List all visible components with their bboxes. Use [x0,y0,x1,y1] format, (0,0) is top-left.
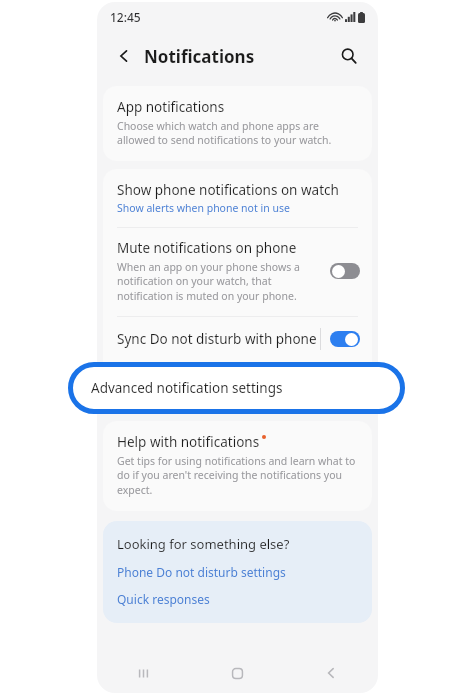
button[interactable]: Search [334,41,364,71]
button[interactable]: Recents [97,653,190,693]
staticText: Notifications [144,45,255,68]
staticText: App notifications [117,98,225,116]
button[interactable]: Home [190,653,284,693]
button[interactable]: Toggle off [330,263,360,279]
staticText: Advanced notification settings [91,379,283,397]
staticText: Get tips for using notifications and lea… [117,454,358,497]
staticText: Show phone notifications on watch [117,181,339,199]
staticText: Choose which watch and phone apps are al… [117,119,358,147]
button[interactable]: Sync Do not disturb with phone [103,317,372,361]
staticText: Quick responses [117,591,210,607]
button[interactable]: Back [284,653,378,693]
button[interactable] [103,361,372,413]
staticText: Phone Do not disturb settings [117,564,286,580]
staticText: Show alerts when phone not in use [117,201,290,215]
staticText: Mute notifications on phone [117,239,297,257]
button[interactable]: Show phone notifications on watch [103,169,372,227]
button[interactable]: Toggle on [330,331,360,347]
staticText: When an app on your phone shows a notifi… [117,260,322,303]
button[interactable]: Back [109,41,139,71]
button[interactable]: App notifications [103,86,372,161]
button[interactable]: Help with notifications [103,421,372,511]
button[interactable]: Advanced notification settings [68,362,405,414]
staticText: 12:45 [110,9,141,25]
button[interactable]: Quick responses [117,591,210,607]
button[interactable]: Mute notifications on phone [103,228,372,316]
button[interactable]: Phone Do not disturb settings [117,564,286,580]
staticText: Looking for something else? [117,535,290,553]
staticText: Help with notifications [117,433,260,451]
staticText: Sync Do not disturb with phone [117,330,320,348]
